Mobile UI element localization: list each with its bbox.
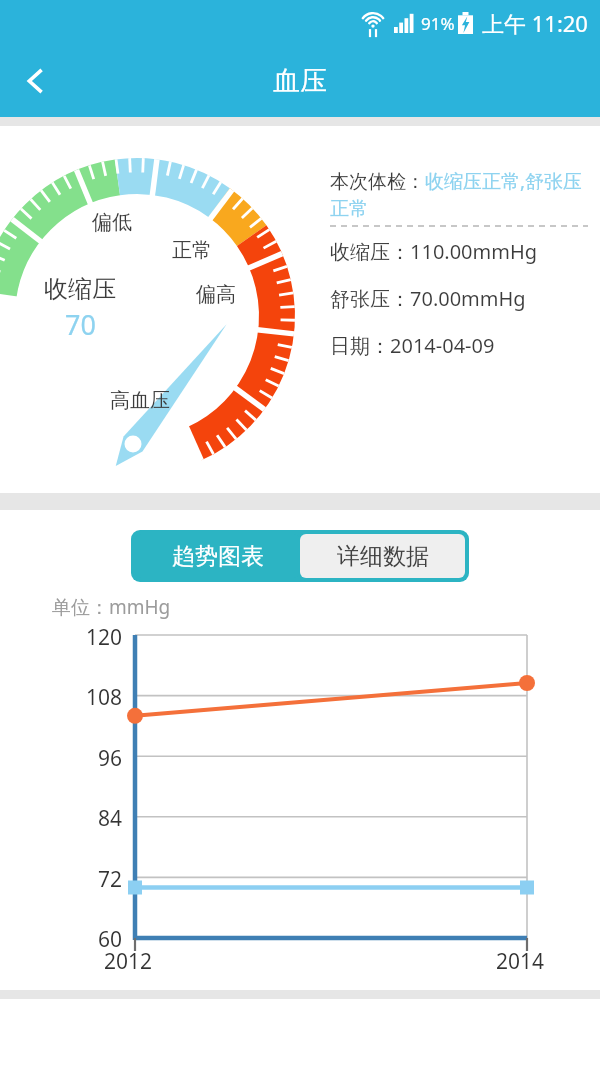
staticText: 血压 [273,64,327,98]
staticText: 72 [60,865,122,894]
button[interactable]: Back [0,45,72,117]
staticText: 趋势图表 [172,542,264,571]
staticText: 2012 [104,947,153,976]
staticText: 91% [421,12,455,35]
staticText: 单位：mmHg [52,594,171,620]
staticText: 收缩压 [44,274,116,304]
staticText: 正常 [172,238,212,263]
staticText: 120 [60,623,122,652]
staticText: 60 [60,925,122,954]
staticText: 96 [60,744,122,773]
staticText: 详细数据 [337,542,429,571]
staticText: 108 [60,683,122,712]
staticText: 2014 [496,947,545,976]
button[interactable]: 详细数据 [300,534,465,578]
staticText: 70 [65,306,96,343]
staticText: 84 [60,804,122,833]
staticText: 上午 11:20 [482,8,588,38]
staticText: 日期：2014-04-09 [330,332,495,359]
staticText: 高血压 [110,388,170,413]
button[interactable]: 趋势图表 [135,534,300,578]
staticText: 舒张压：70.00mmHg [330,285,526,312]
staticText: 偏高 [196,282,236,307]
staticText: 本次体检：收缩压正常,舒张压正常 [330,168,588,221]
staticText: 偏低 [92,210,132,235]
button[interactable]: 偏低 [0,126,600,493]
staticText: 收缩压：110.00mmHg [330,238,538,265]
